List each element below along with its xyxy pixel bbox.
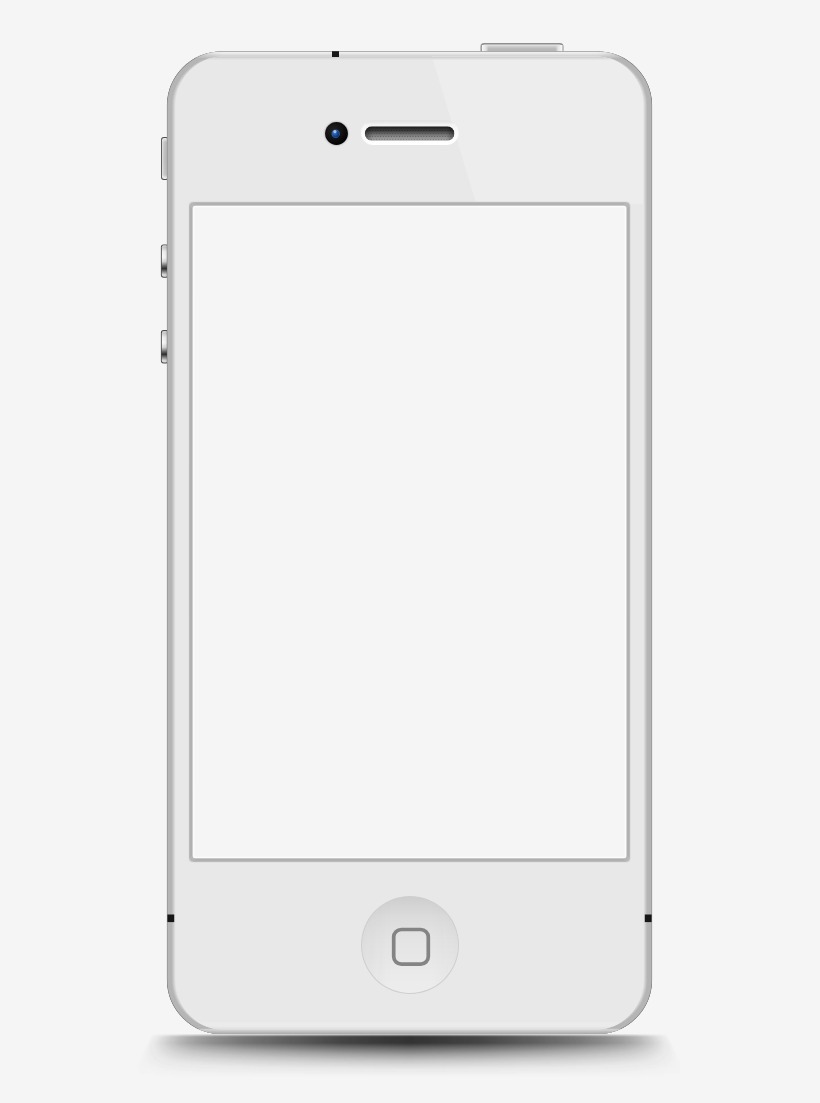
button[interactable]: Volume down [158, 329, 171, 365]
button[interactable]: Front camera [322, 119, 352, 149]
button[interactable]: Phone screen [190, 203, 629, 861]
button[interactable]: Volume up [158, 243, 171, 279]
button[interactable]: Power button [480, 40, 564, 56]
button[interactable]: Earpiece speaker [356, 114, 468, 152]
button[interactable]: Ring / silent switch [158, 136, 171, 181]
button[interactable]: Home button [361, 896, 459, 994]
